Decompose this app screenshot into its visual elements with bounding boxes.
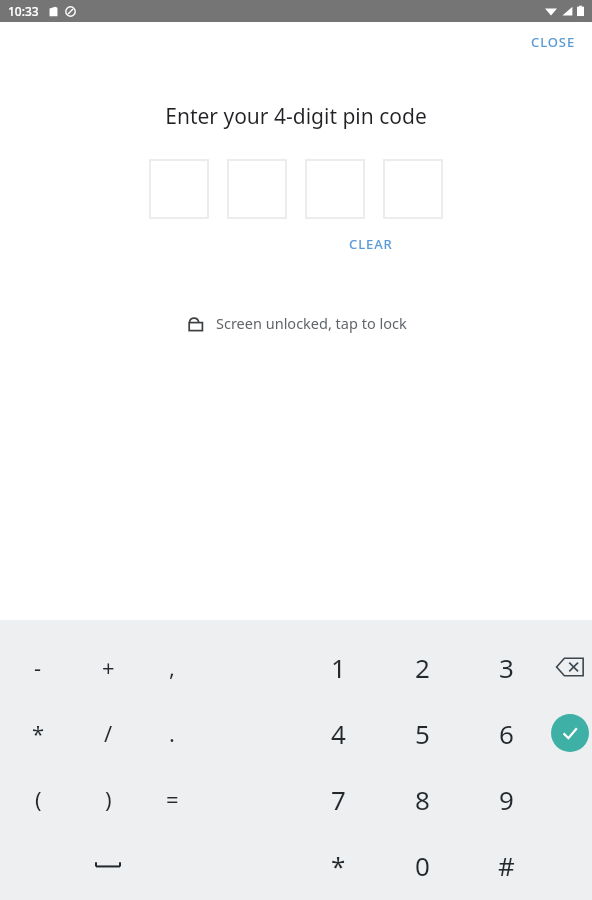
staticText: / — [104, 718, 113, 748]
button[interactable]: Enter — [551, 714, 589, 752]
staticText: - — [34, 652, 42, 682]
other: Screen lock toggle — [186, 313, 206, 333]
staticText: 8 — [415, 782, 430, 817]
button[interactable]: CLEAR — [337, 229, 405, 259]
button[interactable]: * — [296, 832, 380, 898]
staticText: 0 — [415, 848, 430, 883]
button[interactable]: * — [0, 700, 76, 766]
button[interactable]: ( — [0, 766, 76, 832]
button[interactable] — [227, 159, 287, 219]
button[interactable]: 7 — [296, 766, 380, 832]
button[interactable]: Space — [76, 832, 140, 898]
button[interactable]: 5 — [380, 700, 464, 766]
staticText: ) — [105, 784, 112, 814]
staticText: . — [169, 718, 175, 748]
button[interactable]: Backspace — [548, 643, 592, 691]
button[interactable]: CLOSE — [515, 25, 592, 59]
staticText: # — [498, 848, 515, 883]
button[interactable] — [149, 159, 209, 219]
button[interactable]: 8 — [380, 766, 464, 832]
other: Space — [95, 859, 121, 871]
staticText: 3 — [499, 650, 514, 685]
button[interactable]: = — [140, 766, 204, 832]
staticText: CLEAR — [349, 235, 393, 253]
staticText: + — [102, 652, 115, 682]
staticText: * — [32, 718, 45, 748]
staticText: 2 — [415, 650, 430, 685]
staticText: 9 — [499, 782, 514, 817]
staticText: ( — [35, 784, 42, 814]
staticText: 4 — [331, 716, 346, 751]
button[interactable]: 6 — [464, 700, 548, 766]
button[interactable]: Screen lock toggle — [178, 309, 415, 337]
button[interactable]: 2 — [380, 634, 464, 700]
button[interactable]: . — [140, 700, 204, 766]
staticText: 10:33 — [8, 3, 39, 19]
button[interactable]: - — [0, 634, 76, 700]
staticText: Screen unlocked, tap to lock — [216, 313, 407, 333]
button[interactable] — [383, 159, 443, 219]
staticText: 1 — [331, 650, 346, 685]
button[interactable]: 1 — [296, 634, 380, 700]
button[interactable]: / — [76, 700, 140, 766]
button[interactable]: 9 — [464, 766, 548, 832]
staticText: 5 — [415, 716, 430, 751]
button[interactable]: 3 — [464, 634, 548, 700]
staticText: * — [331, 848, 346, 883]
staticText: CLOSE — [531, 33, 576, 51]
button[interactable] — [305, 159, 365, 219]
button[interactable]: + — [76, 634, 140, 700]
staticText: 7 — [331, 782, 346, 817]
button[interactable]: , — [140, 634, 204, 700]
staticText: 6 — [499, 716, 514, 751]
button[interactable]: ) — [76, 766, 140, 832]
staticText: = — [166, 784, 179, 814]
button[interactable]: 4 — [296, 700, 380, 766]
button[interactable]: 0 — [380, 832, 464, 898]
staticText: Enter your 4-digit pin code — [0, 102, 592, 131]
staticText: , — [169, 652, 175, 682]
button[interactable]: # — [464, 832, 548, 898]
